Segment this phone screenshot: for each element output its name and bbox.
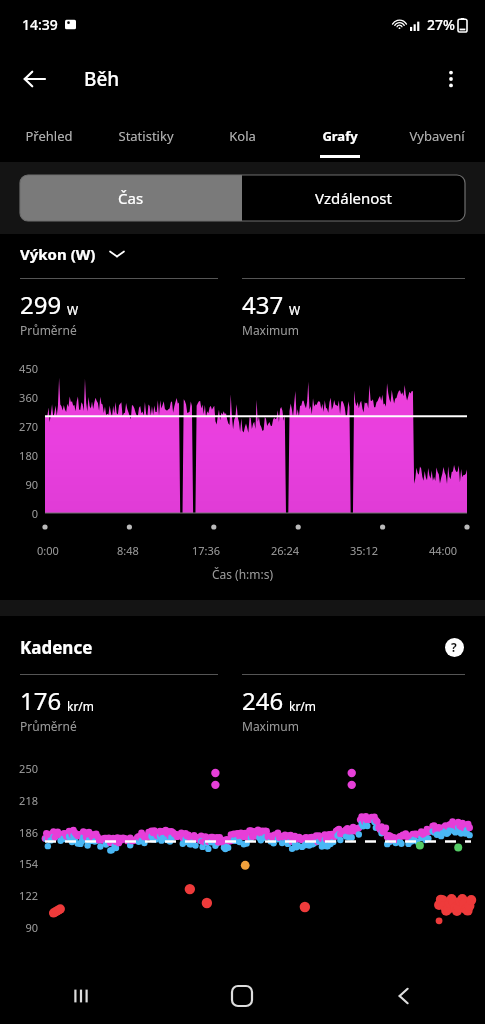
staticText: W	[67, 302, 79, 318]
staticText: Výkon (W)	[20, 244, 96, 264]
staticText: 90	[0, 920, 38, 934]
button[interactable]: Přehled	[0, 110, 97, 162]
staticText: 0	[0, 506, 38, 521]
staticText: 180	[0, 448, 38, 463]
staticText: Maximum	[242, 322, 299, 338]
staticText: Vybavení	[409, 127, 465, 145]
staticText: 218	[0, 793, 38, 808]
staticText: Přehled	[25, 127, 73, 145]
staticText: 44:00	[429, 543, 458, 558]
staticText: 17:36	[192, 543, 221, 558]
staticText: Průměrné	[20, 322, 77, 338]
button[interactable]: Help	[439, 632, 469, 662]
button[interactable]: Back	[323, 968, 485, 1024]
staticText: 450	[0, 361, 38, 376]
staticText: 299	[20, 288, 62, 321]
staticText: Kola	[229, 127, 256, 145]
staticText: 176	[20, 684, 62, 717]
staticText: 122	[0, 888, 38, 903]
staticText: 437	[242, 288, 284, 321]
staticText: kr/m	[289, 698, 317, 714]
staticText: 8:48	[117, 543, 139, 558]
staticText: kr/m	[67, 698, 95, 714]
staticText: 154	[0, 856, 38, 871]
button[interactable]: Statistiky	[97, 110, 194, 162]
staticText: Vzdálenost	[315, 188, 392, 208]
button[interactable]: Home	[161, 968, 323, 1024]
staticText: Průměrné	[20, 718, 77, 734]
staticText: 246	[242, 684, 284, 717]
staticText: Kadence	[20, 636, 93, 659]
button[interactable]: Čas	[20, 175, 242, 221]
button[interactable]: Vybavení	[388, 110, 485, 162]
staticText: 270	[0, 419, 38, 434]
staticText: Statistiky	[118, 127, 174, 145]
staticText: 27%	[427, 15, 455, 34]
staticText: Čas	[118, 188, 144, 208]
staticText: Grafy	[322, 127, 358, 145]
staticText: 26:24	[271, 543, 300, 558]
staticText: Čas (h:m:s)	[0, 566, 485, 582]
staticText: Běh	[84, 66, 120, 92]
button[interactable]: Výkon (W)	[20, 244, 485, 264]
staticText: 0:00	[37, 543, 59, 558]
staticText: 250	[0, 761, 38, 776]
button[interactable]: Grafy	[291, 110, 388, 162]
staticText: 35:12	[350, 543, 379, 558]
button[interactable]: More options	[427, 55, 475, 103]
button[interactable]: Kola	[194, 110, 291, 162]
staticText: 90	[0, 477, 38, 492]
staticText: Maximum	[242, 718, 299, 734]
button[interactable]: Vzdálenost	[242, 175, 465, 221]
staticText: 186	[0, 825, 38, 840]
button[interactable]: Back	[10, 55, 58, 103]
staticText: 360	[0, 390, 38, 405]
button[interactable]: Recents	[0, 968, 161, 1024]
staticText: ?	[451, 639, 457, 655]
staticText: W	[289, 302, 301, 318]
staticText: 14:39	[22, 15, 58, 34]
